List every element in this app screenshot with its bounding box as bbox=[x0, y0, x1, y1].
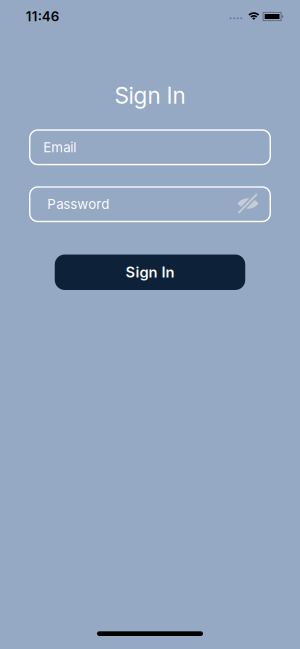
staticText: Sign In bbox=[125, 264, 174, 281]
button[interactable]: Password bbox=[30, 187, 270, 221]
staticText: 11:46 bbox=[26, 8, 60, 24]
button[interactable]: Show password bbox=[236, 192, 260, 216]
staticText: Sign In bbox=[114, 82, 185, 109]
button[interactable]: Sign In bbox=[55, 254, 245, 290]
button[interactable]: Email bbox=[30, 130, 270, 165]
staticText: Password bbox=[47, 196, 109, 212]
staticText: Email bbox=[43, 139, 76, 155]
